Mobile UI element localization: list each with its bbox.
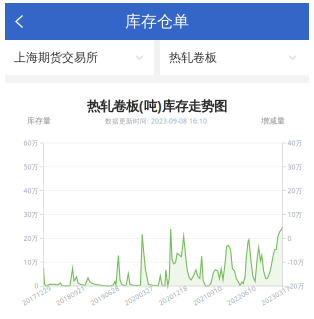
staticText: 50万 xyxy=(23,162,38,171)
staticText: 20190628 xyxy=(89,291,121,300)
staticText: 数据更新时间: 2023-09-08 16:10 xyxy=(105,116,207,125)
staticText: 20171229 xyxy=(20,291,52,300)
button[interactable]: Back xyxy=(5,3,31,40)
staticText: 20200327 xyxy=(123,291,155,300)
staticText: 20万 xyxy=(23,234,38,243)
staticText: 30万 xyxy=(23,210,38,219)
button[interactable]: 上海期货交易所 xyxy=(5,40,154,75)
staticText: 热轧卷板(吨)库存走势图 xyxy=(87,97,227,115)
staticText: 库存量 xyxy=(27,116,51,126)
staticText: 40万 xyxy=(23,186,38,195)
button[interactable]: 热轧卷板 xyxy=(160,40,309,75)
staticText: 60万 xyxy=(23,139,38,147)
staticText: 0 xyxy=(287,234,291,243)
staticText: 库存仓单 xyxy=(125,12,189,31)
staticText: -10万 xyxy=(287,258,304,267)
staticText: 20万 xyxy=(287,186,302,195)
staticText: 10万 xyxy=(23,258,38,267)
staticText: 20180921 xyxy=(55,291,87,300)
staticText: 10万 xyxy=(287,210,302,219)
staticText: 20230317 xyxy=(259,291,291,300)
staticText: 0 xyxy=(34,282,38,290)
staticText: -20万 xyxy=(287,282,304,290)
staticText: 增减量 xyxy=(261,116,285,126)
staticText: 上海期货交易所 xyxy=(14,50,98,65)
staticText: 热轧卷板 xyxy=(169,50,217,65)
staticText: 20220610 xyxy=(225,291,257,300)
staticText: 40万 xyxy=(287,139,302,147)
staticText: 20201218 xyxy=(157,291,189,300)
staticText: 30万 xyxy=(287,162,302,171)
staticText: 20210910 xyxy=(191,291,223,300)
